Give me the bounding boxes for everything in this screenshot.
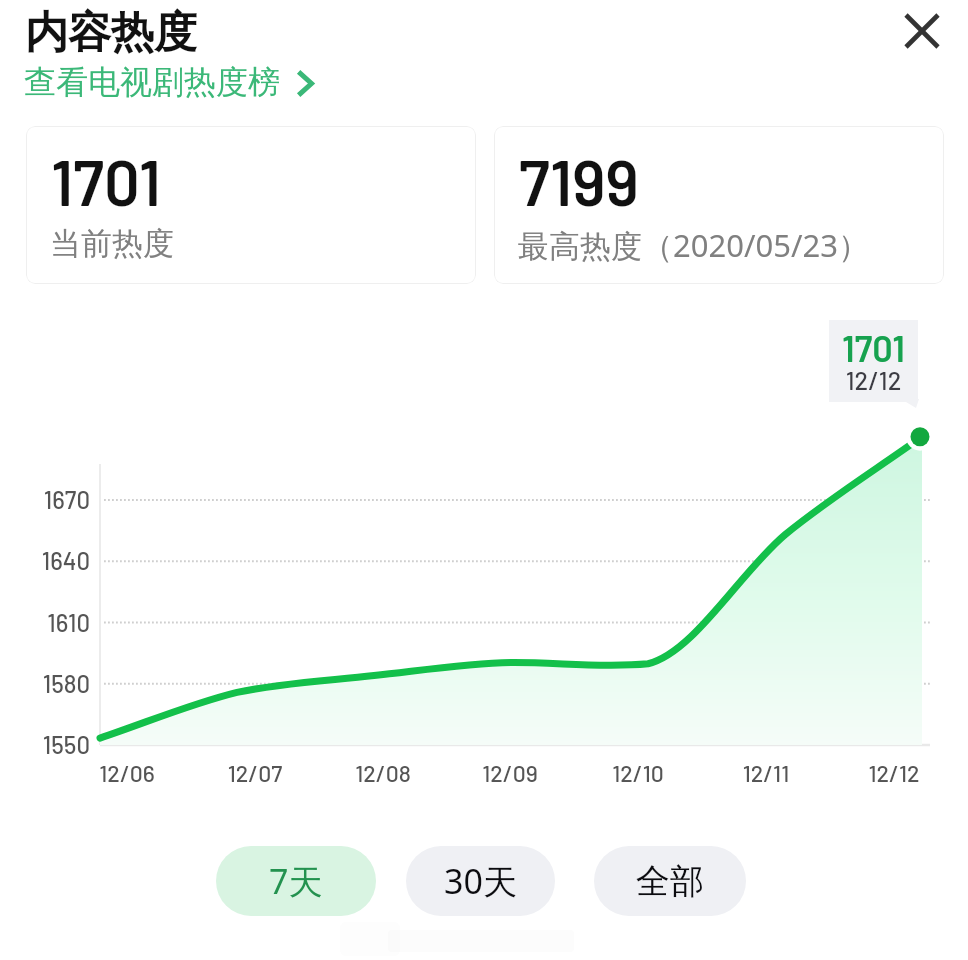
- button[interactable]: Close: [897, 6, 946, 55]
- staticText: 1640: [20, 546, 90, 575]
- staticText: 12/09: [460, 759, 560, 787]
- staticText: 12/10: [588, 759, 688, 787]
- staticText: 12/11: [716, 759, 816, 787]
- button[interactable]: 查看电视剧热度榜: [24, 62, 309, 102]
- button[interactable]: 1701: [829, 320, 918, 402]
- staticText: 1701: [51, 143, 161, 219]
- staticText: 最高热度（2020/05/23）: [518, 224, 869, 266]
- button[interactable]: 7天: [216, 846, 376, 916]
- staticText: 1701: [829, 326, 918, 369]
- staticText: 12/12: [844, 759, 944, 787]
- staticText: 7199: [519, 143, 639, 219]
- staticText: 1610: [20, 608, 90, 637]
- staticText: 内容热度: [25, 6, 197, 60]
- staticText: 12/12: [829, 365, 918, 395]
- staticText: 30天: [444, 858, 517, 904]
- staticText: 7天: [269, 858, 323, 904]
- staticText: 1580: [20, 669, 90, 698]
- button[interactable]: 30天: [406, 846, 555, 916]
- button[interactable]: 1701: [26, 126, 476, 284]
- button[interactable]: 全部: [594, 846, 746, 916]
- staticText: 12/08: [333, 759, 433, 787]
- staticText: 12/07: [205, 759, 305, 787]
- staticText: 12/06: [77, 759, 177, 787]
- button[interactable]: 7199: [494, 126, 944, 284]
- staticText: 1670: [20, 485, 90, 514]
- staticText: 1550: [20, 730, 90, 759]
- staticText: 当前热度: [50, 224, 174, 263]
- staticText: 全部: [636, 860, 704, 903]
- staticText: 查看电视剧热度榜: [24, 62, 280, 102]
